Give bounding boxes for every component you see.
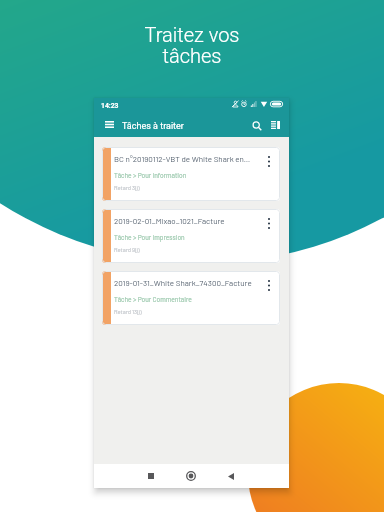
staticText: Retard 9(j) bbox=[114, 246, 140, 253]
staticText: BC n°20190112-VBT de White Shark en… bbox=[114, 154, 251, 164]
button[interactable]: Open navigation menu bbox=[101, 115, 118, 134]
button[interactable]: 2019-01-31_White Shark_74300_Facture bbox=[102, 271, 280, 325]
staticText: Tâche > Pour information bbox=[114, 171, 187, 179]
button[interactable]: Search bbox=[247, 115, 266, 136]
staticText: Retard 13(j) bbox=[114, 308, 142, 315]
button[interactable]: Change view bbox=[264, 115, 286, 135]
staticText: 14:23 bbox=[101, 102, 119, 110]
staticText: 2019-01-31_White Shark_74300_Facture bbox=[114, 278, 252, 288]
button[interactable]: 2019-02-01_Mixao_1021_Facture bbox=[102, 209, 280, 263]
staticText: Traitez vos tâches bbox=[0, 23, 384, 68]
button[interactable]: More options bbox=[259, 212, 279, 234]
staticText: Tâches à traiter bbox=[122, 121, 184, 132]
staticText: Tâche > Pour Commentaire bbox=[114, 295, 192, 303]
staticText: Tâche > Pour impression bbox=[114, 233, 185, 241]
button[interactable]: BC n°20190112-VBT de White Shark en… bbox=[102, 147, 280, 201]
staticText: 2019-02-01_Mixao_1021_Facture bbox=[114, 216, 225, 226]
button[interactable]: Recent apps bbox=[138, 464, 163, 488]
button[interactable]: More options bbox=[259, 274, 279, 296]
button[interactable]: Home bbox=[178, 464, 203, 488]
staticText: Retard 3(j) bbox=[114, 184, 140, 191]
button[interactable]: More options bbox=[259, 150, 279, 172]
button[interactable]: Back bbox=[218, 464, 243, 488]
